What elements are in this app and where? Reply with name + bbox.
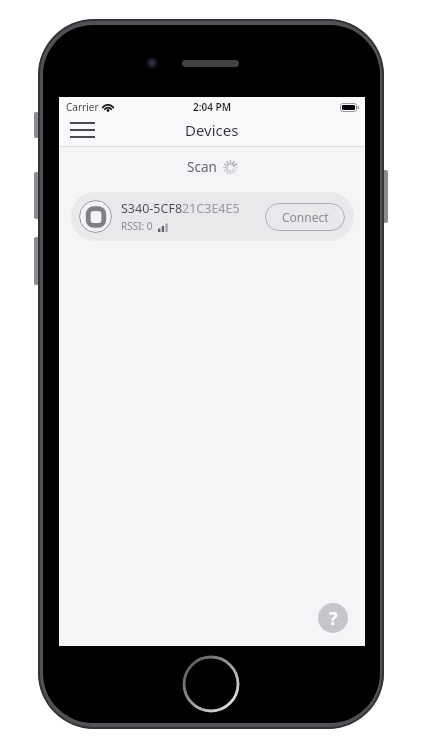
button[interactable]: ? (318, 603, 348, 633)
button[interactable]: Connect (265, 203, 345, 231)
button[interactable]: S340-5CF821C3E4E5 (71, 192, 354, 241)
staticText: Devices (185, 120, 239, 140)
button[interactable]: Scan (59, 155, 365, 179)
staticText: ? (329, 606, 338, 631)
staticText: 2:04 PM (193, 100, 231, 114)
staticText: Scan (187, 158, 217, 176)
button[interactable] (70, 122, 95, 138)
staticText: Carrier (66, 100, 99, 114)
staticText: RSSI: 0 (121, 219, 153, 233)
staticText: S340-5CF821C3E4E5 (121, 200, 240, 217)
staticText: Connect (282, 209, 329, 225)
